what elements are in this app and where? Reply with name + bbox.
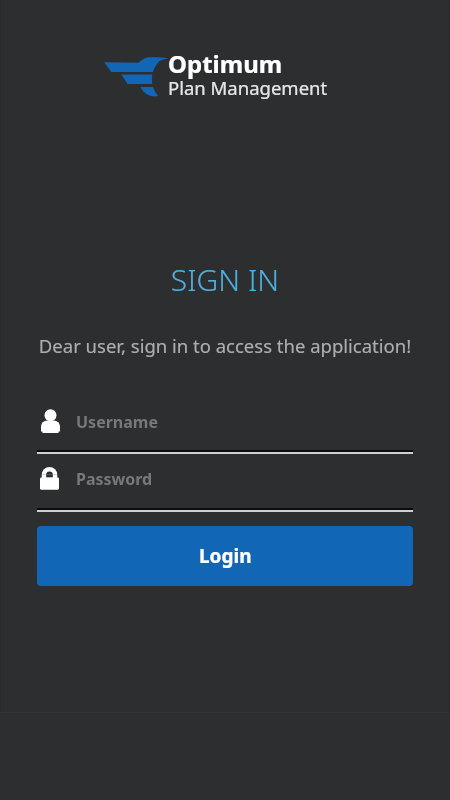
staticText: SIGN IN xyxy=(0,259,450,300)
staticText: Optimum xyxy=(168,47,283,80)
staticText: Username xyxy=(76,411,158,433)
button[interactable]: Password xyxy=(37,462,413,512)
other: Optimum logo xyxy=(104,56,169,101)
staticText: Login xyxy=(199,543,252,569)
button[interactable]: Username xyxy=(37,404,413,454)
staticText: Password xyxy=(76,468,153,490)
staticText: Plan Management xyxy=(168,75,328,100)
staticText: Dear user, sign in to access the applica… xyxy=(0,333,450,358)
button[interactable]: Login xyxy=(37,526,413,586)
